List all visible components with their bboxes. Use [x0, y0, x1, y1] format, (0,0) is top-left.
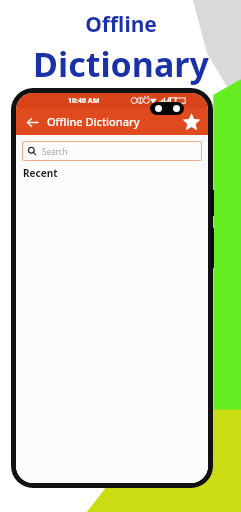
staticText: Offline Dictionary [47, 114, 140, 129]
staticText: Dictionary [33, 41, 209, 87]
staticText: Search [42, 146, 68, 157]
button[interactable]: Back [22, 112, 42, 132]
staticText: 10:40 AM [68, 96, 100, 106]
button[interactable]: Favorites [180, 111, 202, 133]
staticText: Offline [85, 10, 157, 39]
button[interactable]: Search [22, 141, 202, 161]
staticText: Recent [23, 166, 58, 180]
